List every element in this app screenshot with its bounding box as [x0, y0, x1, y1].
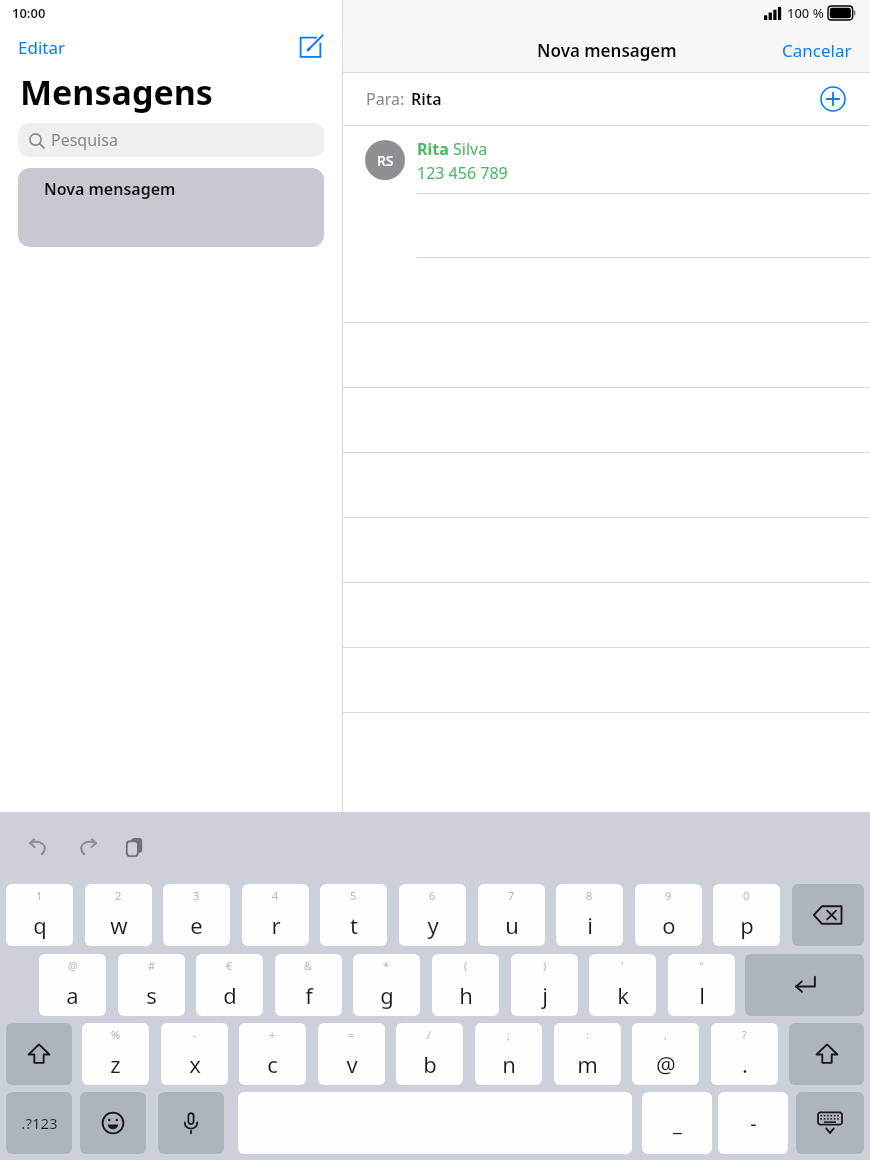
- button[interactable]: #: [118, 954, 185, 1016]
- button[interactable]: @: [39, 954, 106, 1016]
- staticText: k: [617, 980, 629, 1010]
- button[interactable]: [343, 518, 870, 583]
- staticText: -: [750, 1110, 757, 1137]
- staticText: Cancelar: [782, 39, 852, 62]
- button[interactable]: ;: [475, 1023, 542, 1085]
- button[interactable]: 2: [85, 884, 152, 946]
- button[interactable]: Emoji: [80, 1092, 146, 1154]
- staticText: e: [190, 910, 203, 940]
- button[interactable]: ": [668, 954, 735, 1016]
- staticText: z: [110, 1049, 121, 1079]
- button[interactable]: %: [82, 1023, 149, 1085]
- button[interactable]: [343, 323, 870, 388]
- button[interactable]: (: [432, 954, 499, 1016]
- button[interactable]: Shift: [789, 1023, 864, 1085]
- button[interactable]: [343, 453, 870, 518]
- staticText: 8: [586, 888, 593, 903]
- button[interactable]: Ditado: [158, 1092, 224, 1154]
- staticText: j: [542, 980, 548, 1010]
- button[interactable]: -: [161, 1023, 228, 1085]
- staticText: b: [423, 1049, 437, 1079]
- staticText: 7: [508, 888, 515, 903]
- button[interactable]: Para:: [343, 73, 870, 125]
- button[interactable]: 6: [399, 884, 466, 946]
- button[interactable]: Nova mensagem: [294, 30, 328, 64]
- staticText: i: [587, 910, 593, 940]
- staticText: 5: [350, 888, 357, 903]
- staticText: Nova mensagem: [537, 39, 677, 62]
- staticText: ?: [742, 1027, 747, 1042]
- staticText: v: [346, 1049, 358, 1079]
- staticText: :: [586, 1027, 589, 1042]
- staticText: Editar: [18, 36, 65, 59]
- button[interactable]: [343, 194, 870, 258]
- staticText: -: [193, 1027, 197, 1042]
- staticText: a: [66, 980, 79, 1010]
- button[interactable]: 3: [163, 884, 230, 946]
- staticText: Mensagens: [20, 69, 213, 115]
- button[interactable]: 0: [713, 884, 780, 946]
- staticText: 10:00: [12, 4, 46, 22]
- button[interactable]: *: [353, 954, 420, 1016]
- staticText: Para:: [366, 88, 405, 110]
- button[interactable]: =: [318, 1023, 385, 1085]
- button[interactable]: ,: [632, 1023, 699, 1085]
- button[interactable]: Nova mensagem: [18, 168, 324, 247]
- staticText: o: [662, 910, 676, 940]
- button[interactable]: Apagar: [792, 884, 864, 946]
- staticText: 4: [272, 888, 279, 903]
- button[interactable]: 7: [478, 884, 545, 946]
- button[interactable]: Shift: [6, 1023, 72, 1085]
- staticText: h: [459, 980, 473, 1010]
- staticText: y: [427, 910, 439, 940]
- staticText: 2: [115, 888, 122, 903]
- button[interactable]: Colar: [118, 830, 152, 864]
- staticText: *: [383, 958, 390, 973]
- staticText: 100 %: [787, 4, 824, 22]
- staticText: f: [305, 980, 313, 1010]
- staticText: /: [427, 1027, 432, 1042]
- button[interactable]: /: [396, 1023, 463, 1085]
- staticText: 1: [36, 888, 43, 903]
- button[interactable]: 9: [635, 884, 702, 946]
- button[interactable]: [343, 388, 870, 453]
- button[interactable]: Refazer: [70, 830, 104, 864]
- button[interactable]: Pesquisa: [18, 123, 324, 157]
- button[interactable]: 4: [242, 884, 309, 946]
- staticText: €: [226, 958, 233, 973]
- button[interactable]: Anular: [22, 830, 56, 864]
- button[interactable]: -: [718, 1092, 788, 1154]
- button[interactable]: .?123: [6, 1092, 72, 1154]
- staticText: p: [740, 910, 754, 940]
- button[interactable]: +: [239, 1023, 306, 1085]
- staticText: Rita: [411, 88, 442, 110]
- staticText: ": [699, 958, 704, 973]
- button[interactable]: 5: [320, 884, 387, 946]
- button[interactable]: [343, 583, 870, 648]
- staticText: 123 456 789: [417, 162, 508, 184]
- staticText: _: [673, 1110, 682, 1137]
- staticText: Nova mensagem: [44, 178, 176, 200]
- button[interactable]: 1: [6, 884, 73, 946]
- staticText: q: [33, 910, 47, 940]
- button[interactable]: Adicionar contacto: [818, 84, 848, 114]
- button[interactable]: Cancelar: [770, 33, 864, 68]
- button[interactable]: _: [642, 1092, 712, 1154]
- button[interactable]: [343, 258, 870, 323]
- staticText: s: [146, 980, 157, 1010]
- staticText: %: [111, 1027, 121, 1042]
- staticText: 0: [743, 888, 750, 903]
- button[interactable]: [343, 648, 870, 713]
- button[interactable]: ?: [711, 1023, 778, 1085]
- button[interactable]: 8: [556, 884, 623, 946]
- button[interactable]: ': [589, 954, 656, 1016]
- button[interactable]: &: [275, 954, 342, 1016]
- button[interactable]: €: [196, 954, 263, 1016]
- button[interactable]: :: [554, 1023, 621, 1085]
- button[interactable]: RS: [343, 126, 870, 194]
- button[interactable]: Editar: [6, 30, 77, 65]
- button[interactable]: Enter: [745, 954, 864, 1016]
- button[interactable]: ): [511, 954, 578, 1016]
- button[interactable]: Fechar teclado: [796, 1092, 864, 1154]
